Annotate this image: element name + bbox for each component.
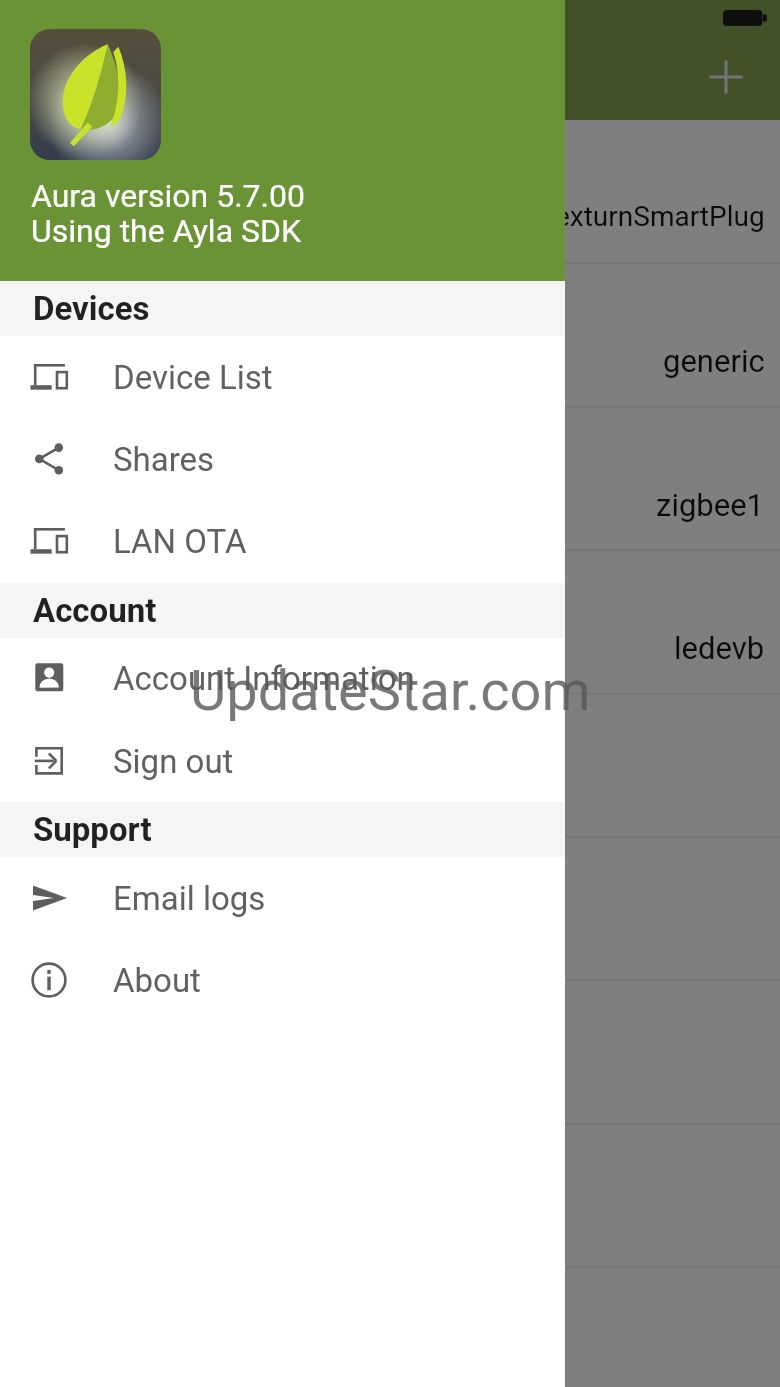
button[interactable]: Sign out <box>0 720 565 802</box>
staticText: Device List <box>113 358 273 397</box>
staticText: Email logs <box>113 879 266 918</box>
staticText: LAN OTA <box>113 522 247 561</box>
button[interactable]: ledevb <box>0 550 780 693</box>
staticText: zigbee1 <box>656 487 765 523</box>
button[interactable]: Account Information <box>0 637 565 719</box>
button[interactable]: generic <box>0 263 780 406</box>
button[interactable]: LAN OTA <box>0 500 565 582</box>
staticText: Aura version 5.7.00 <box>31 177 305 215</box>
staticText: generic <box>663 343 765 379</box>
staticText: Account Information <box>113 659 415 698</box>
staticText: ledevb <box>674 630 765 666</box>
staticText: About <box>113 961 201 1000</box>
staticText: NexturnSmartPlug <box>535 200 765 233</box>
staticText: Support <box>33 810 152 849</box>
staticText: Using the Ayla SDK <box>31 212 302 250</box>
button[interactable]: zigbee1 <box>0 407 780 550</box>
staticText: UpdateStar.com <box>190 658 591 724</box>
button[interactable]: About <box>0 939 565 1021</box>
staticText: Devices <box>33 289 150 328</box>
button[interactable]: Shares <box>0 418 565 500</box>
button[interactable]: Add device <box>694 45 758 109</box>
staticText: Sign out <box>113 742 234 781</box>
button[interactable]: Email logs <box>0 857 565 939</box>
button[interactable]: NexturnSmartPlug <box>0 120 780 263</box>
staticText: Shares <box>113 440 215 479</box>
button[interactable]: Device List <box>0 336 565 418</box>
staticText: Account <box>33 591 157 630</box>
